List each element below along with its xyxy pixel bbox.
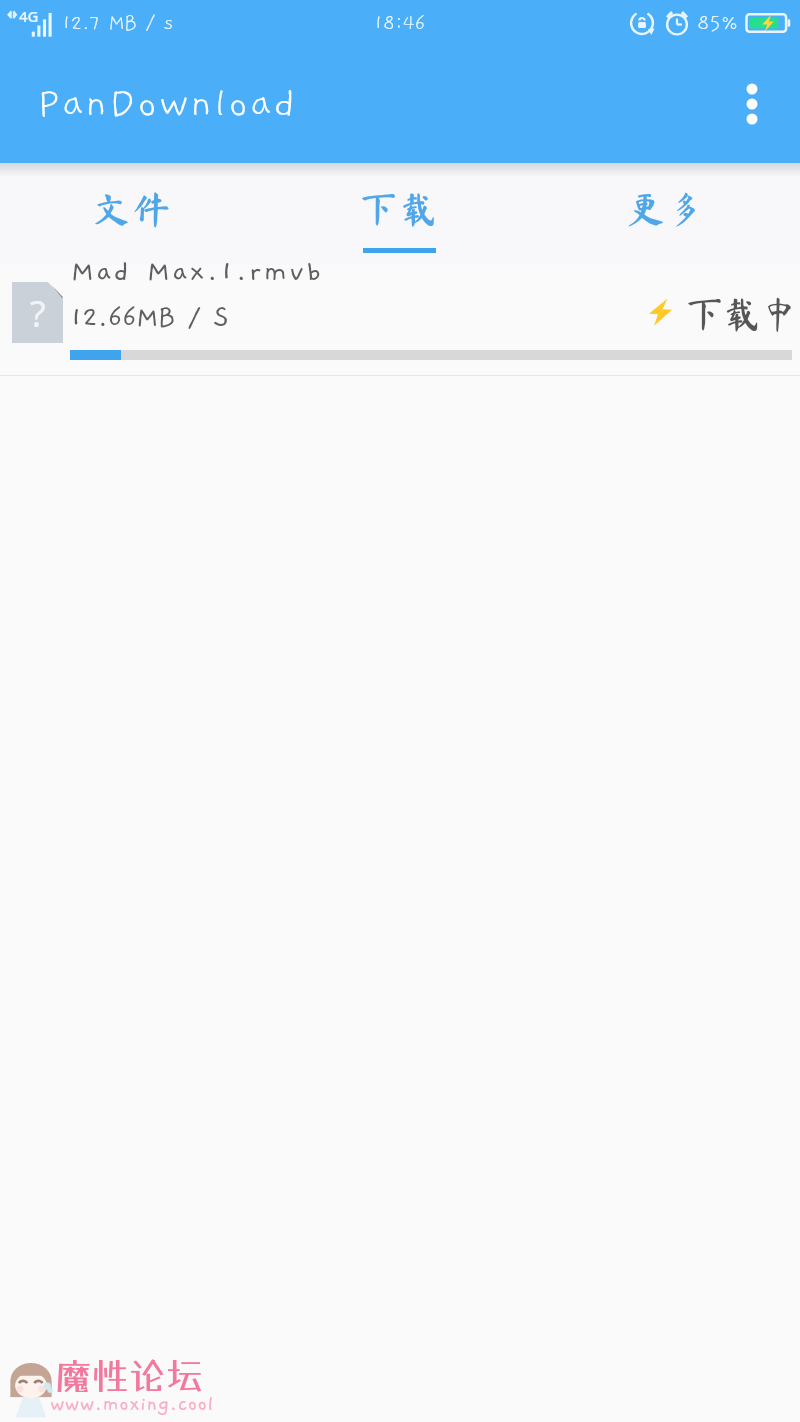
staticText: 魔性论坛 bbox=[55, 1354, 203, 1398]
staticText: 85% bbox=[697, 12, 739, 35]
staticText: 12.66MB / S bbox=[70, 302, 229, 333]
button[interactable]: ? bbox=[0, 265, 800, 375]
button[interactable]: 文件 bbox=[0, 173, 266, 265]
staticText: 文件 bbox=[93, 190, 173, 227]
staticText: Mad Max.1.rmvb bbox=[71, 256, 324, 288]
staticText: PanDownload bbox=[38, 82, 298, 126]
staticText: 下载 bbox=[360, 190, 440, 227]
staticText: 更多 bbox=[627, 190, 707, 227]
staticText: www.moxing.cool bbox=[50, 1393, 215, 1415]
staticText: 18:46 bbox=[374, 12, 426, 34]
button[interactable]: More options bbox=[704, 45, 800, 163]
button[interactable]: 更多 bbox=[533, 173, 800, 265]
staticText: 下载中 bbox=[686, 295, 799, 332]
button[interactable]: 下载 bbox=[266, 173, 533, 265]
staticText: ? bbox=[30, 289, 46, 338]
staticText: 4G bbox=[19, 6, 39, 26]
staticText: 12.7 MB / s bbox=[62, 12, 173, 34]
